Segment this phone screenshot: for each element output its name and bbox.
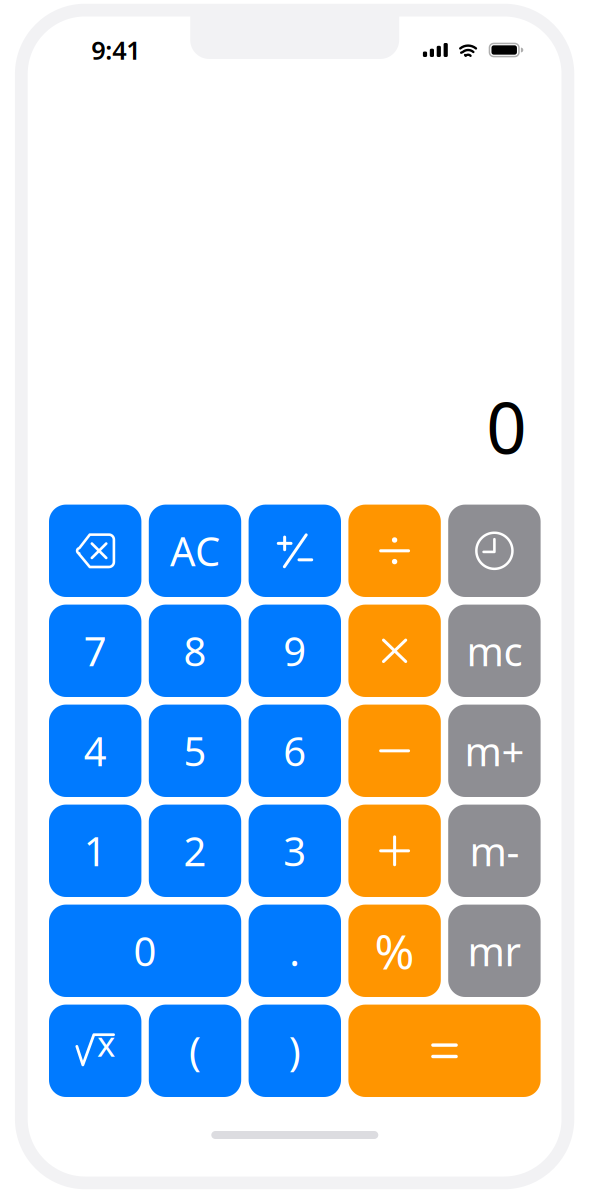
button[interactable]: 0 <box>49 905 241 997</box>
staticText: AC <box>170 524 220 577</box>
button[interactable]: 5 <box>149 705 241 797</box>
button[interactable]: mr <box>448 905 541 997</box>
staticText: 9:41 <box>91 33 140 67</box>
button[interactable]: Equals <box>348 1005 541 1097</box>
button[interactable]: Multiply <box>348 605 441 697</box>
button[interactable]: AC <box>149 505 241 597</box>
button[interactable]: 9 <box>249 605 341 697</box>
staticText: 3 <box>283 824 306 877</box>
staticText: mr <box>467 924 521 977</box>
button[interactable]: 7 <box>49 605 141 697</box>
staticText: ( <box>189 1024 201 1077</box>
staticText: 8 <box>183 624 206 677</box>
staticText: . <box>289 924 300 977</box>
button[interactable]: Delete <box>49 505 141 597</box>
staticText: ) <box>289 1024 301 1077</box>
staticText: 6 <box>283 724 306 777</box>
staticText: % <box>375 919 415 983</box>
staticText: x <box>97 1020 115 1066</box>
button[interactable]: mc <box>448 605 541 697</box>
staticText: 7 <box>84 624 107 677</box>
button[interactable]: 1 <box>49 805 141 897</box>
staticText: 4 <box>84 724 107 777</box>
button[interactable]: . <box>249 905 341 997</box>
staticText: 2 <box>183 824 206 877</box>
staticText: 9 <box>283 624 306 677</box>
button[interactable]: m- <box>448 805 541 897</box>
staticText: 1 <box>84 824 107 877</box>
button[interactable]: 6 <box>249 705 341 797</box>
staticText: m+ <box>464 724 524 777</box>
button[interactable]: Minus <box>348 705 441 797</box>
staticText: 0 <box>486 380 526 474</box>
button[interactable]: 4 <box>49 705 141 797</box>
button[interactable]: 2 <box>149 805 241 897</box>
staticText: 0 <box>134 924 157 977</box>
button[interactable]: m+ <box>448 705 541 797</box>
button[interactable]: % <box>348 905 441 997</box>
staticText: mc <box>466 624 522 677</box>
button[interactable]: 3 <box>249 805 341 897</box>
button[interactable]: Divide <box>348 505 441 597</box>
button[interactable]: ( <box>149 1005 241 1097</box>
button[interactable]: Square root <box>49 1005 141 1097</box>
button[interactable]: 8 <box>149 605 241 697</box>
staticText: m- <box>469 824 519 877</box>
button[interactable]: Plus <box>348 805 441 897</box>
staticText: 5 <box>183 724 206 777</box>
button[interactable]: Plus minus <box>249 505 341 597</box>
button[interactable]: ) <box>249 1005 341 1097</box>
button[interactable]: History <box>448 505 541 597</box>
